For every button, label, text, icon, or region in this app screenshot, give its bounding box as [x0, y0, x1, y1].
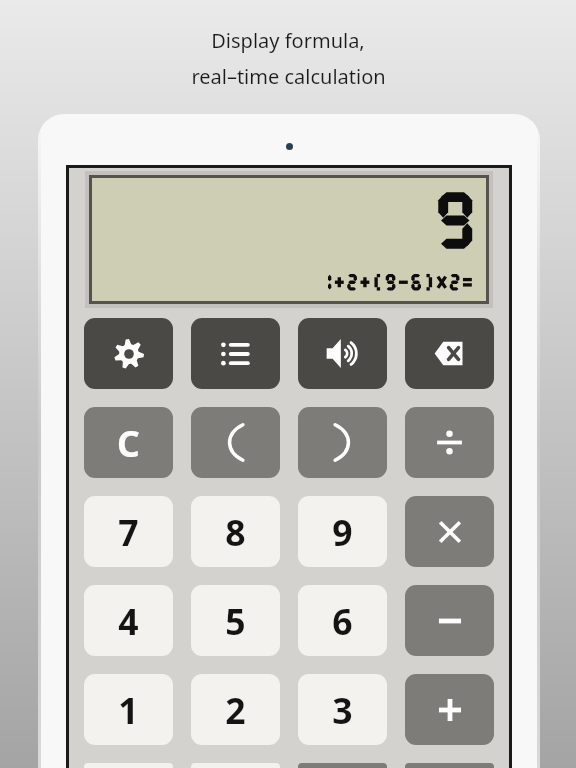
button[interactable]: 7	[84, 496, 173, 567]
button[interactable]: 9	[298, 496, 387, 567]
staticText: 6	[332, 597, 353, 645]
staticText: 5	[225, 597, 246, 645]
button[interactable]: C	[84, 407, 173, 478]
button[interactable]: 4	[84, 585, 173, 656]
button[interactable]: History	[191, 318, 280, 389]
staticText: 8	[225, 508, 246, 556]
button[interactable]: Multiply	[405, 496, 494, 567]
button[interactable]: Divide	[405, 407, 494, 478]
staticText: 3	[332, 686, 353, 734]
button[interactable]: 1	[84, 674, 173, 745]
button[interactable]: 8	[191, 496, 280, 567]
button[interactable]: %	[298, 763, 387, 768]
staticText: real–time calculation	[191, 63, 386, 90]
button[interactable]: =	[405, 763, 494, 768]
staticText: 2	[225, 686, 246, 734]
staticText: 9	[332, 508, 353, 556]
staticText: 7	[118, 508, 139, 556]
button[interactable]: Close parenthesis	[298, 407, 387, 478]
staticText: Display formula,	[211, 27, 365, 54]
button[interactable]: Sound	[298, 318, 387, 389]
button[interactable]: Plus	[405, 674, 494, 745]
button[interactable]: Settings	[84, 318, 173, 389]
button[interactable]: 0	[84, 763, 173, 768]
button[interactable]: Open parenthesis	[191, 407, 280, 478]
staticText: 1	[118, 686, 139, 734]
button[interactable]: 3	[298, 674, 387, 745]
staticText: C	[117, 419, 140, 467]
button[interactable]: .	[191, 763, 280, 768]
staticText: 4	[118, 597, 139, 645]
button[interactable]: Minus	[405, 585, 494, 656]
button[interactable]: 2	[191, 674, 280, 745]
button[interactable]: 5	[191, 585, 280, 656]
button[interactable]: Backspace	[405, 318, 494, 389]
button[interactable]: 6	[298, 585, 387, 656]
